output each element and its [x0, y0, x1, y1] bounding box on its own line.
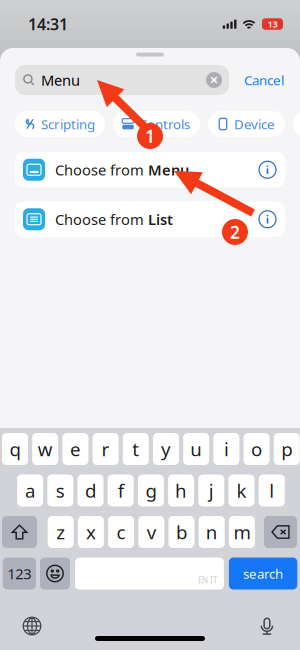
staticText: Device: [234, 115, 275, 133]
staticText: l: [269, 478, 274, 503]
button[interactable]: l: [259, 474, 285, 506]
staticText: 123: [7, 564, 31, 583]
button[interactable]: Scripting: [15, 111, 105, 137]
button[interactable]: o: [244, 433, 270, 465]
button[interactable]: Dictate: [250, 609, 284, 643]
staticText: n: [206, 520, 218, 544]
button[interactable]: Next keyboard: [15, 609, 49, 643]
button[interactable]: r: [93, 433, 119, 465]
staticText: Choose from Menu: [55, 160, 189, 179]
staticText: Cancel: [244, 71, 284, 89]
staticText: 13: [267, 18, 277, 30]
button[interactable]: u: [183, 433, 209, 465]
staticText: t: [132, 437, 139, 461]
staticText: e: [70, 437, 81, 461]
button[interactable]: a: [17, 474, 43, 506]
button[interactable]: g: [138, 474, 164, 506]
button[interactable]: Choose from List: [15, 201, 285, 237]
staticText: j: [209, 478, 214, 503]
button[interactable]: h: [168, 474, 194, 506]
button[interactable]: [293, 111, 300, 137]
button[interactable]: 123: [3, 557, 36, 589]
button[interactable]: e: [62, 433, 88, 465]
button[interactable]: k: [228, 474, 254, 506]
button[interactable]: t: [123, 433, 149, 465]
staticText: z: [56, 520, 65, 544]
staticText: c: [117, 520, 126, 544]
staticText: r: [102, 437, 110, 461]
staticText: y: [161, 437, 171, 461]
staticText: i: [224, 437, 229, 461]
button[interactable]: Choose from Menu: [15, 152, 285, 187]
staticText: Scripting: [41, 115, 95, 133]
button[interactable]: q: [2, 433, 28, 465]
staticText: x: [86, 520, 96, 544]
staticText: v: [147, 520, 156, 544]
staticText: EN IT: [198, 575, 217, 585]
staticText: o: [251, 437, 262, 461]
staticText: k: [236, 478, 246, 503]
staticText: Menu: [41, 70, 80, 90]
button[interactable]: Controls: [113, 111, 200, 137]
staticText: d: [85, 478, 96, 503]
staticText: search: [243, 565, 283, 582]
button[interactable]: c: [108, 516, 134, 548]
button[interactable]: s: [47, 474, 73, 506]
button[interactable]: v: [138, 516, 164, 548]
staticText: h: [175, 478, 187, 503]
button[interactable]: x: [78, 516, 104, 548]
staticText: g: [145, 478, 156, 503]
button[interactable]: b: [168, 516, 194, 548]
staticText: Controls: [139, 115, 190, 133]
staticText: b: [176, 520, 187, 544]
staticText: a: [25, 478, 35, 503]
staticText: s: [56, 478, 65, 503]
staticText: 14:31: [28, 13, 68, 35]
button[interactable]: z: [48, 516, 74, 548]
button[interactable]: Shift: [2, 516, 37, 548]
staticText: 1: [145, 124, 155, 147]
button[interactable]: d: [77, 474, 103, 506]
staticText: m: [233, 520, 250, 544]
button[interactable]: y: [153, 433, 179, 465]
button[interactable]: Device: [208, 111, 285, 137]
button[interactable]: Cancel: [236, 65, 292, 95]
button[interactable]: search: [229, 557, 297, 589]
staticText: q: [9, 437, 20, 461]
button[interactable]: i: [213, 433, 239, 465]
button[interactable]: j: [198, 474, 224, 506]
button[interactable]: w: [32, 433, 58, 465]
staticText: u: [190, 437, 202, 461]
button[interactable]: Delete: [264, 516, 297, 548]
button[interactable]: n: [199, 516, 225, 548]
button[interactable]: f: [108, 474, 134, 506]
staticText: f: [118, 478, 124, 503]
staticText: p: [281, 437, 292, 461]
staticText: 2: [230, 220, 240, 243]
staticText: w: [38, 437, 53, 461]
button[interactable]: p: [274, 433, 300, 465]
button[interactable]: m: [229, 516, 255, 548]
button[interactable]: space: [75, 557, 224, 589]
staticText: Choose from List: [55, 209, 173, 229]
button[interactable]: Emoji: [40, 557, 70, 589]
